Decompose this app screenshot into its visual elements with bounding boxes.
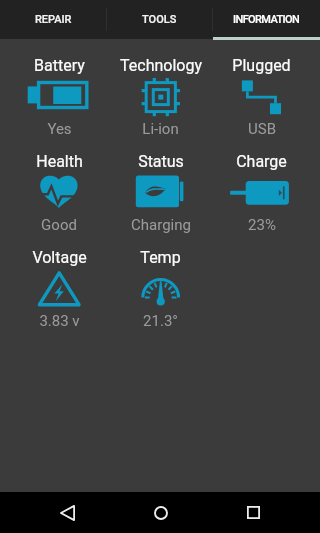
staticText: Health: [36, 152, 83, 171]
button[interactable]: INFORMATION: [213, 0, 320, 39]
staticText: Good: [41, 216, 77, 234]
staticText: INFORMATION: [233, 13, 300, 26]
staticText: REPAIR: [35, 13, 72, 26]
staticText: TOOLS: [142, 13, 177, 26]
button[interactable]: REPAIR: [0, 0, 106, 39]
button[interactable]: Home: [114, 492, 207, 533]
staticText: Plugged: [232, 56, 291, 75]
staticText: Voltage: [32, 248, 87, 267]
staticText: USB: [248, 120, 276, 138]
button[interactable]: Battery: [8, 42, 110, 138]
staticText: Status: [138, 152, 184, 171]
button[interactable]: Charge: [211, 138, 312, 234]
staticText: Technology: [120, 56, 202, 75]
button[interactable]: TOOLS: [106, 0, 213, 39]
staticText: Li-ion: [142, 120, 179, 138]
staticText: 23%: [248, 216, 276, 234]
button[interactable]: Voltage: [8, 234, 110, 330]
button[interactable]: Technology: [110, 42, 211, 138]
staticText: Yes: [47, 120, 72, 138]
button[interactable]: Plugged: [211, 42, 312, 138]
staticText: Temp: [140, 248, 181, 267]
button[interactable]: Status: [110, 138, 211, 234]
staticText: 21.3°: [143, 312, 178, 330]
button[interactable]: Temp: [110, 234, 211, 330]
staticText: 3.83 v: [39, 312, 80, 330]
staticText: Charge: [236, 152, 287, 171]
staticText: Charging: [131, 216, 191, 234]
button[interactable]: Recent apps: [207, 492, 300, 533]
staticText: Battery: [34, 56, 85, 75]
button[interactable]: Health: [8, 138, 110, 234]
button[interactable]: Back: [20, 492, 114, 533]
